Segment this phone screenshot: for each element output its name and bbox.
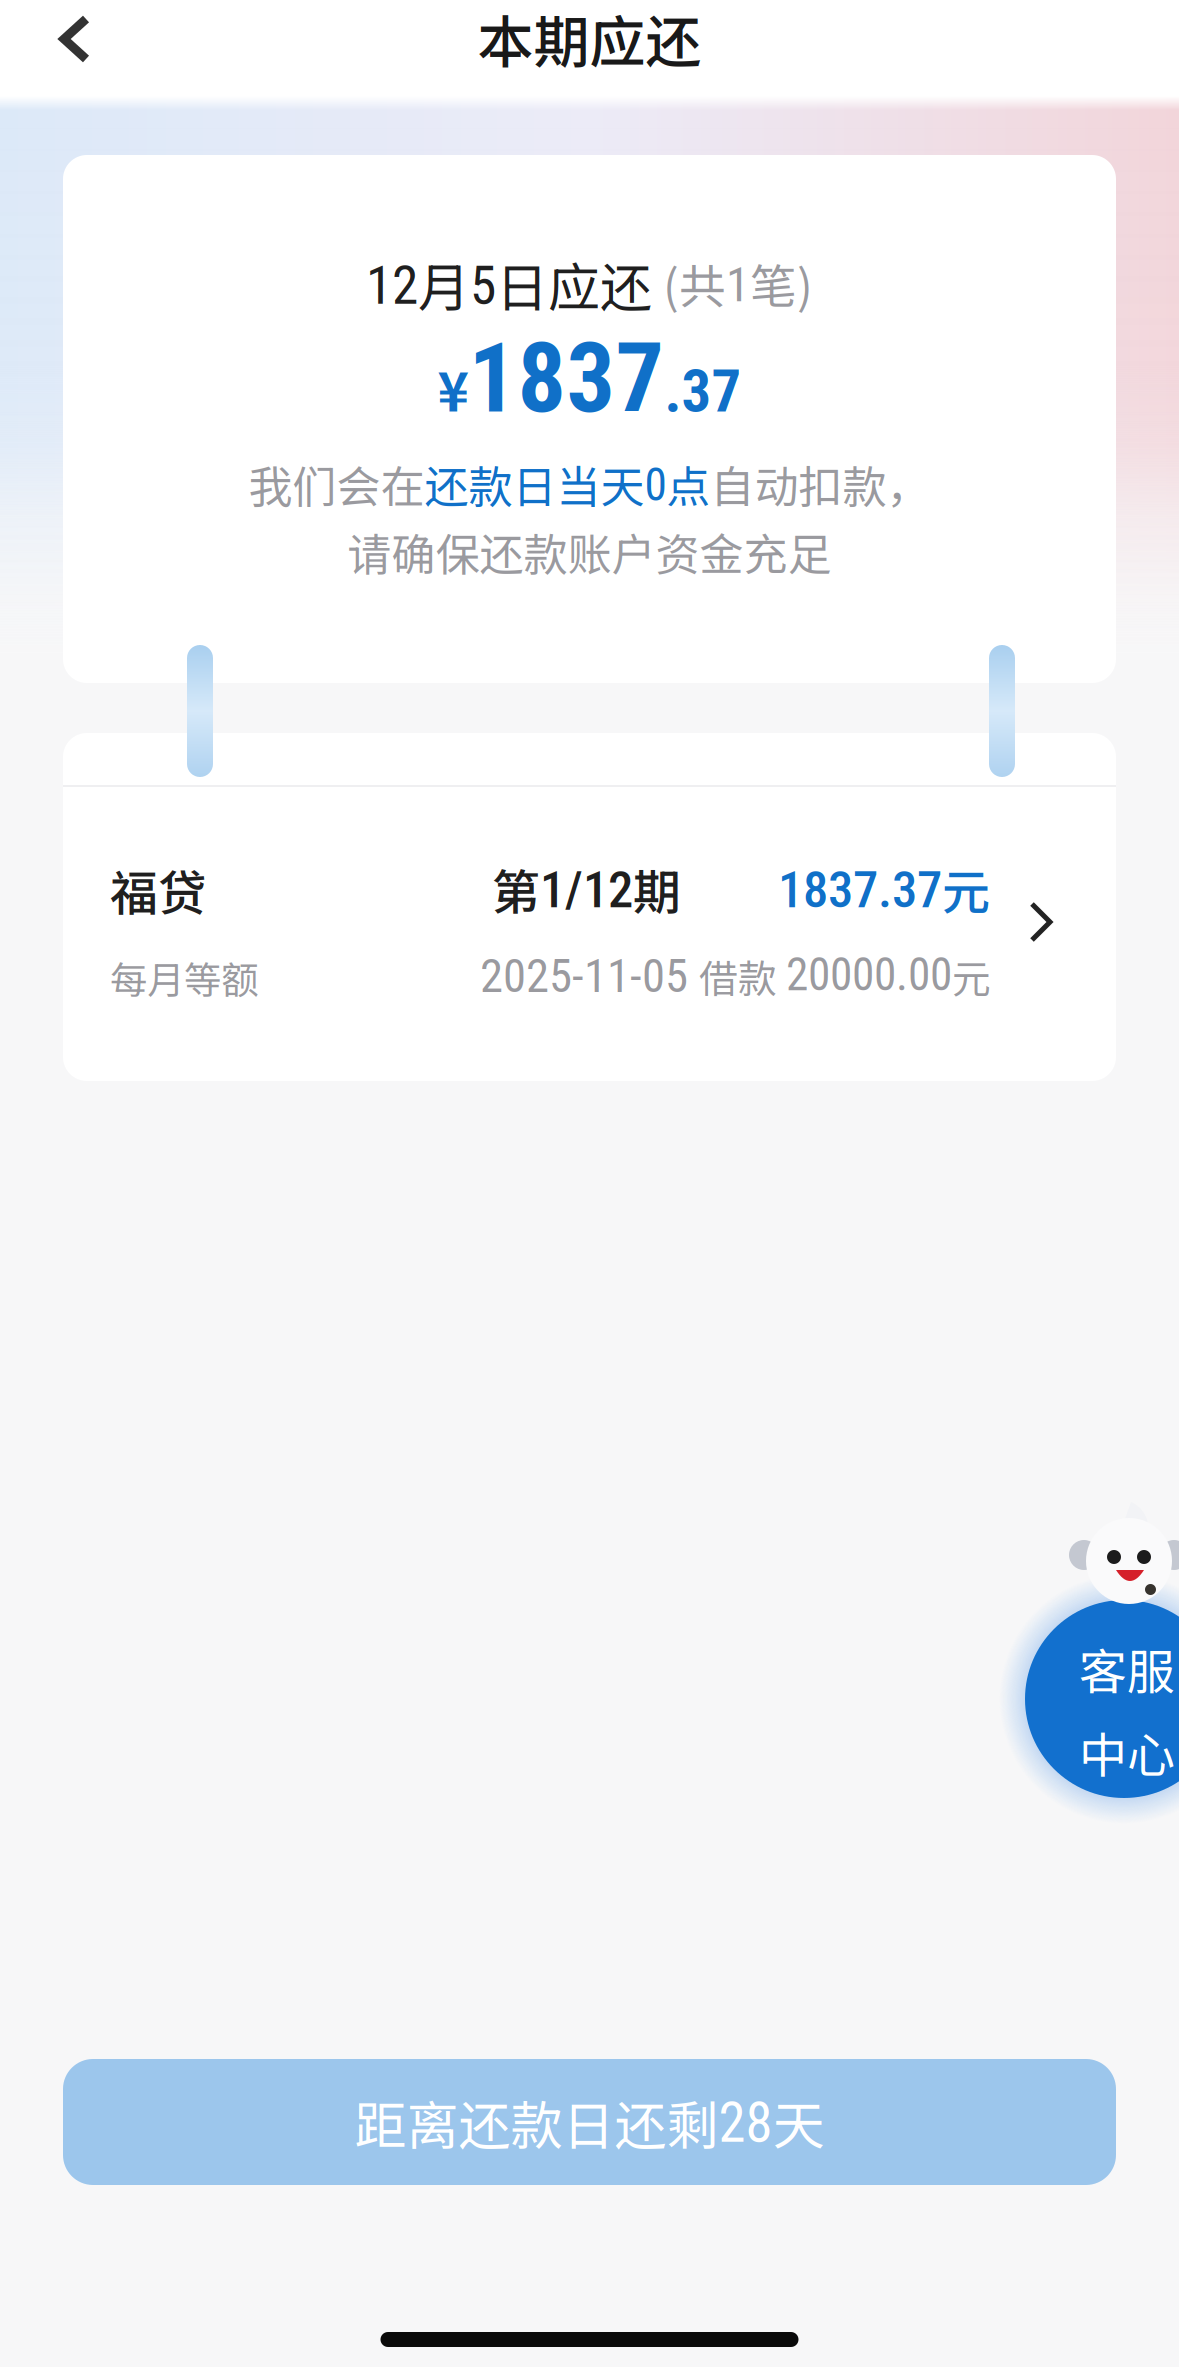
staticText: 每月等额	[110, 950, 258, 1005]
staticText: 第1/12期	[492, 855, 681, 923]
staticText: 借款 20000.00元	[699, 949, 991, 1003]
staticText: 客服	[1079, 1633, 1175, 1703]
button[interactable]: 距离还款日还剩28天	[0, 2059, 1179, 2185]
button[interactable]: 返回	[0, 0, 150, 96]
staticText: 本期应还	[477, 0, 701, 79]
staticText: 1837.37元	[778, 855, 990, 923]
staticText: 自动扣款，	[710, 452, 930, 516]
staticText: 1837	[468, 322, 664, 435]
staticText: 中心	[1079, 1717, 1175, 1786]
button[interactable]: 客服中心	[1025, 1500, 1179, 1798]
button[interactable]: 福贷	[0, 733, 1179, 1081]
staticText: ¥	[437, 350, 468, 427]
staticText: .37	[664, 357, 741, 426]
staticText: 还款日当天0点	[424, 453, 710, 515]
staticText: 距离还款日还剩28天	[354, 2085, 824, 2159]
staticText: 我们会在	[248, 452, 424, 516]
staticText: (共1笔)	[663, 250, 813, 316]
staticText: 12月5日应还	[366, 247, 652, 320]
staticText: 福贷	[110, 855, 206, 924]
staticText: 请确保还款账户资金充足	[347, 520, 831, 583]
staticText: 2025-11-05	[480, 949, 688, 1003]
